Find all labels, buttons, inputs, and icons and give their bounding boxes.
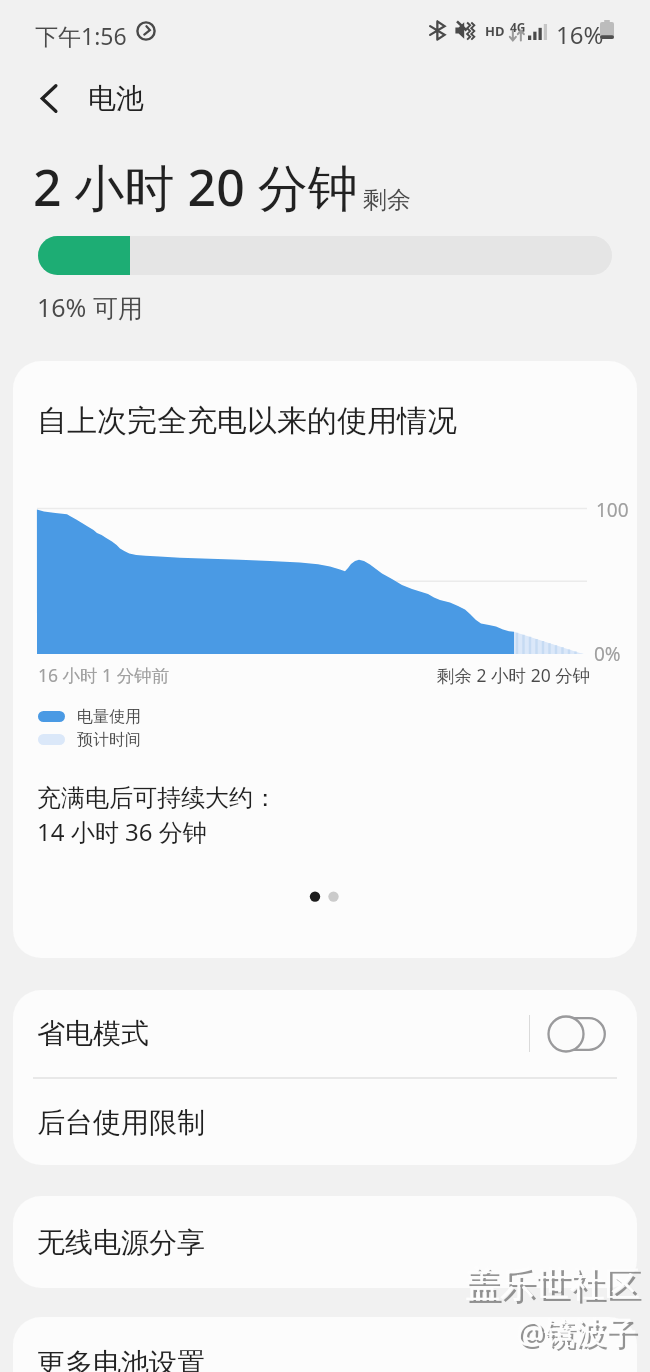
staticText: 预计时间 xyxy=(77,730,141,750)
button[interactable]: 自上次完全充电以来的使用情况 xyxy=(13,361,637,958)
staticText: 更多电池设置 xyxy=(37,1346,205,1372)
button[interactable]: 后台使用限制 xyxy=(13,1079,637,1165)
staticText: 16 小时 1 分钟前 xyxy=(38,663,170,687)
staticText: 盖乐世社区 xyxy=(465,1262,640,1306)
staticText: 无线电源分享 xyxy=(37,1225,205,1260)
staticText: @镜波子 xyxy=(519,1313,640,1355)
button[interactable]: 无线电源分享 xyxy=(13,1196,637,1288)
staticText: 16% xyxy=(556,18,604,51)
button[interactable]: Power saving toggle xyxy=(548,1016,606,1052)
button[interactable]: 更多电池设置 xyxy=(13,1317,637,1372)
staticText: 剩余 2 小时 20 分钟 xyxy=(437,663,591,687)
staticText: 电量使用 xyxy=(77,707,141,727)
staticText: 16% 可用 xyxy=(37,290,143,324)
staticText: HD xyxy=(485,22,505,40)
staticText: 自上次完全充电以来的使用情况 xyxy=(37,402,457,440)
staticText: 2 小时 20 分钟 xyxy=(33,153,358,221)
staticText: 14 小时 36 分钟 xyxy=(37,815,207,848)
button[interactable]: Back xyxy=(24,73,74,123)
staticText: 0% xyxy=(594,641,621,667)
button[interactable]: 省电模式 xyxy=(13,990,637,1077)
staticText: 充满电后可持续大约： xyxy=(37,783,277,813)
staticText: 电池 xyxy=(88,81,144,116)
staticText: 盖乐世社区 xyxy=(468,1265,643,1309)
staticText: 省电模式 xyxy=(37,1016,149,1051)
staticText: 后台使用限制 xyxy=(37,1105,205,1140)
staticText: 100 xyxy=(596,497,629,523)
staticText: 4G xyxy=(510,19,526,35)
staticText: 剩余 xyxy=(363,185,411,215)
staticText: @镜波子 xyxy=(516,1310,637,1352)
staticText: 下午1:56 xyxy=(35,20,127,51)
